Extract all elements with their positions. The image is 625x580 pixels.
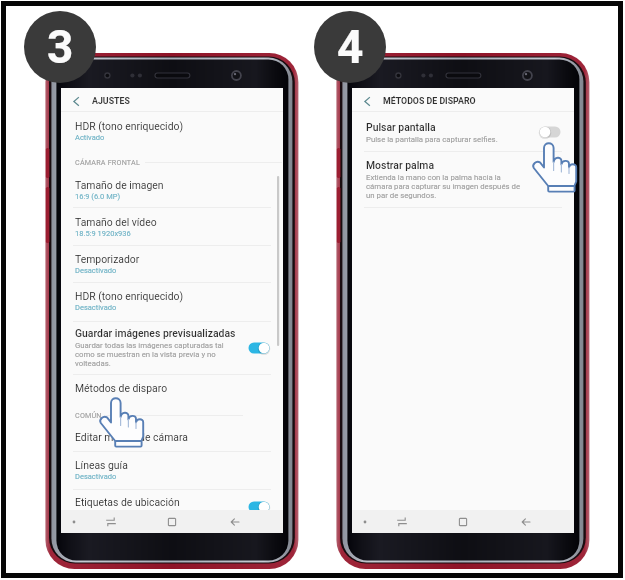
staticText: 16:9 (6.0 MP)	[75, 192, 121, 201]
staticText: Etiquetas de ubicación	[75, 496, 180, 508]
staticText: Editar modos de cámara	[75, 431, 188, 443]
button[interactable]: Menú	[354, 510, 376, 533]
staticText: Tamaño del vídeo	[75, 216, 157, 228]
button[interactable]: Inicio	[452, 510, 474, 533]
staticText: un par de segundos.	[366, 191, 437, 200]
button[interactable]: Pulsar pantalla	[537, 124, 563, 140]
other: Atrás	[61, 88, 92, 114]
other: Atrás	[352, 88, 383, 114]
button[interactable]: Mostrar palma	[352, 159, 574, 200]
staticText: Extienda la mano con la palma hacia la	[366, 173, 501, 182]
button[interactable]: Atrás	[224, 510, 246, 533]
button[interactable]: Guardar imágenes previsualizadas	[246, 340, 272, 356]
staticText: Pulsar pantalla	[366, 121, 436, 133]
button[interactable]: Tamaño de imagen	[61, 179, 283, 201]
staticText: como se muestran en la vista previa y no	[75, 350, 216, 359]
button[interactable]: Recientes	[391, 510, 413, 533]
button[interactable]: Líneas guía	[61, 459, 283, 481]
staticText: COMÚN	[75, 411, 102, 419]
button[interactable]: Menú	[63, 510, 85, 533]
staticText: cámara para capturar su imagen después d…	[366, 182, 521, 191]
staticText: Líneas guía	[75, 459, 128, 471]
staticText: 3	[47, 20, 74, 74]
staticText: Guardar todas las imágenes capturadas ta…	[75, 341, 224, 350]
button[interactable]: Temporizador	[61, 253, 283, 275]
staticText: Guardar imágenes previsualizadas	[75, 327, 236, 339]
staticText: Activado	[75, 133, 105, 142]
button[interactable]: Etiquetas de ubicación	[246, 499, 272, 515]
button[interactable]: Atrás	[352, 88, 574, 114]
button[interactable]: Atrás	[515, 510, 537, 533]
staticText: Desactivado	[75, 472, 117, 481]
staticText: MÉTODOS DE DISPARO	[383, 96, 476, 106]
staticText: CÁMARA FRONTAL	[75, 158, 141, 166]
staticText: 4	[337, 20, 364, 74]
button[interactable]: Tamaño del vídeo	[61, 216, 283, 238]
button[interactable]: 4	[314, 11, 386, 83]
staticText: HDR (tono enriquecido)	[75, 120, 184, 132]
button[interactable]: Inicio	[161, 510, 183, 533]
staticText: Pulse la pantalla para capturar selfies.	[366, 135, 498, 144]
button[interactable]: HDR (tono enriquecido)	[61, 290, 283, 312]
staticText: Temporizador	[75, 253, 140, 265]
button[interactable]: Editar modos de cámara	[61, 431, 283, 443]
button[interactable]: 3	[24, 11, 96, 83]
button[interactable]: Métodos de disparo	[61, 382, 283, 394]
button[interactable]: Atrás	[61, 88, 283, 114]
staticText: AJUSTES	[92, 96, 130, 106]
button[interactable]: Etiquetas de ubicación	[61, 496, 283, 508]
staticText: Desactivado	[75, 266, 117, 275]
staticText: Tamaño de imagen	[75, 179, 164, 191]
button[interactable]: Guardar imágenes previsualizadas	[61, 327, 283, 368]
staticText: 18.5:9 1920x936	[75, 229, 131, 238]
staticText: volteadas.	[75, 359, 111, 368]
button[interactable]: HDR (tono enriquecido)	[61, 120, 283, 142]
staticText: HDR (tono enriquecido)	[75, 290, 184, 302]
button[interactable]: Pulsar pantalla	[352, 121, 574, 144]
staticText: Mostrar palma	[366, 159, 435, 171]
staticText: Métodos de disparo	[75, 382, 168, 394]
button[interactable]: Recientes	[100, 510, 122, 533]
staticText: Desactivado	[75, 303, 117, 312]
